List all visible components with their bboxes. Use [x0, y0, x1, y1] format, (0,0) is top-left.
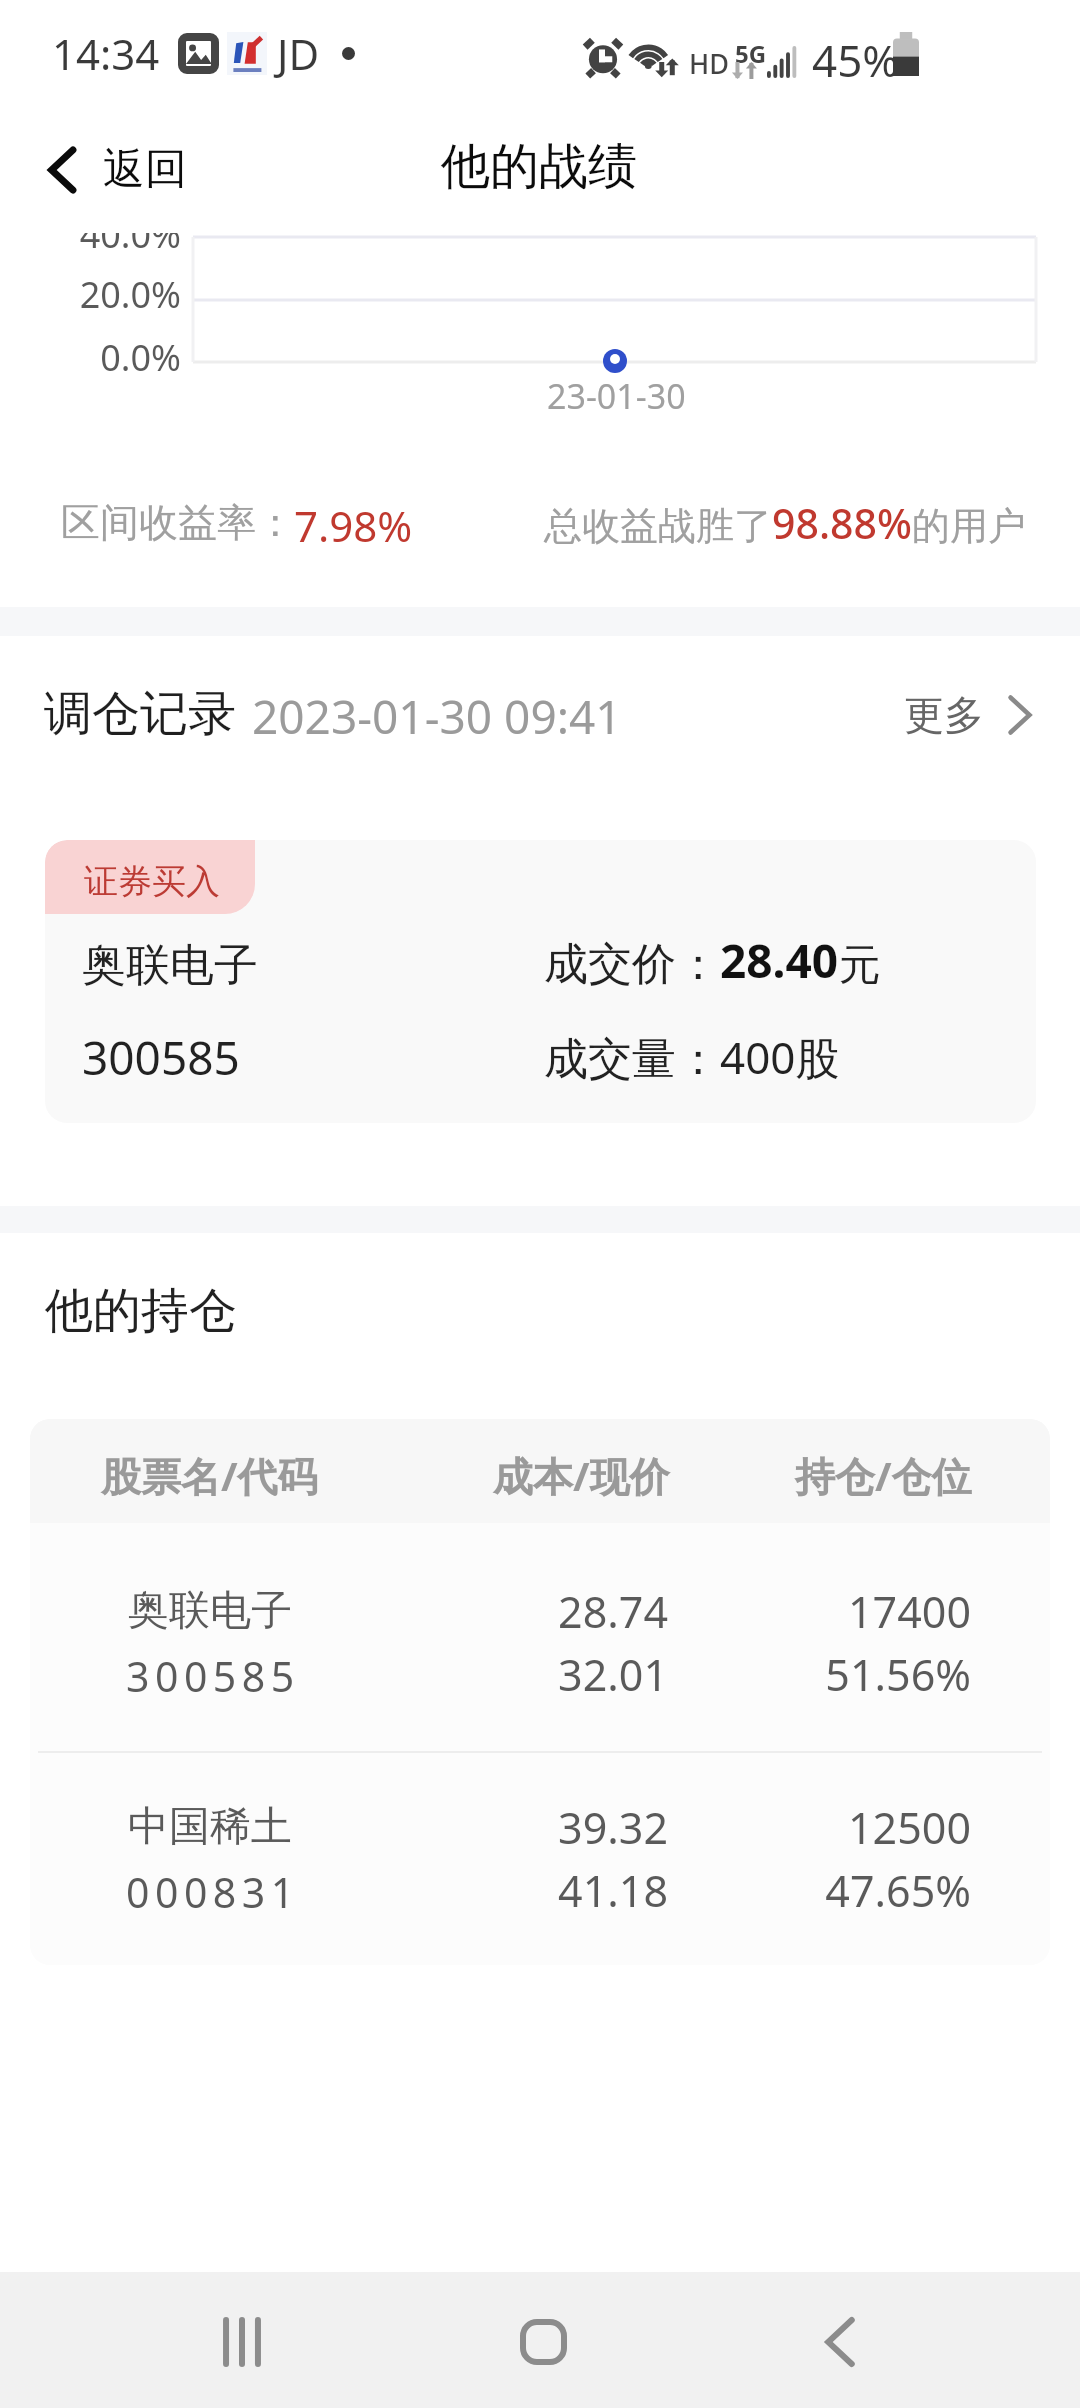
staticText: 奥联电子	[128, 1585, 292, 1637]
staticText: 39.32	[410, 1798, 668, 1857]
staticText: 成本/现价	[493, 1448, 670, 1503]
staticText: 41.18	[410, 1861, 668, 1920]
button[interactable]: Back	[780, 2282, 900, 2402]
staticText: 他的战绩	[441, 136, 637, 198]
staticText: 成交量：	[544, 1032, 720, 1087]
button[interactable]: Home	[483, 2282, 603, 2402]
button[interactable]: 中国稀土	[30, 1751, 1050, 1965]
staticText: 32.01	[410, 1645, 668, 1704]
staticText: 成交价：	[544, 937, 720, 992]
staticText: 他的持仓	[45, 1281, 237, 1341]
staticText: 300585	[82, 1026, 240, 1089]
staticText: 区间收益率：	[61, 498, 295, 547]
staticText: 调仓记录	[44, 684, 236, 744]
staticText: 45%	[812, 30, 899, 90]
staticText: 40.0%	[0, 233, 181, 259]
staticText: 5G	[735, 37, 767, 70]
staticText: 0.0%	[0, 333, 181, 382]
staticText: JD	[277, 25, 320, 82]
staticText: 2023-01-30 09:41	[252, 685, 622, 748]
staticText: 400股	[720, 1027, 840, 1087]
staticText: 持仓/仓位	[795, 1448, 972, 1503]
staticText: 7.98%	[294, 497, 413, 554]
staticText: 奥联电子	[82, 938, 258, 993]
button[interactable]: 更多	[890, 674, 1045, 756]
button[interactable]: 奥联电子	[30, 1523, 1050, 1751]
staticText: 51.56%	[710, 1645, 971, 1704]
staticText: 元	[839, 939, 881, 992]
staticText: 返回	[103, 143, 187, 196]
staticText: 总收益战胜了98.88%的用户	[544, 495, 1026, 551]
button[interactable]: 返回	[35, 135, 211, 204]
staticText: 中国稀土	[128, 1801, 292, 1853]
staticText: 23-01-30	[547, 373, 686, 419]
staticText: 20.0%	[0, 270, 181, 319]
button[interactable]: Recent apps	[182, 2282, 302, 2402]
staticText: 股票名/代码	[101, 1448, 318, 1503]
staticText: 证券买入	[84, 860, 220, 903]
staticText: 17400	[710, 1582, 971, 1641]
staticText: 28.40	[720, 929, 839, 992]
staticText: 300585	[126, 1648, 300, 1704]
staticText: 14:34	[52, 25, 160, 82]
staticText: 12500	[710, 1798, 971, 1857]
staticText: 47.65%	[710, 1861, 971, 1920]
staticText: 28.74	[410, 1582, 668, 1641]
staticText: 000831	[126, 1864, 300, 1920]
button[interactable]: 证券买入	[45, 840, 1036, 1123]
staticText: HD	[689, 45, 729, 82]
staticText: 更多	[904, 690, 984, 740]
